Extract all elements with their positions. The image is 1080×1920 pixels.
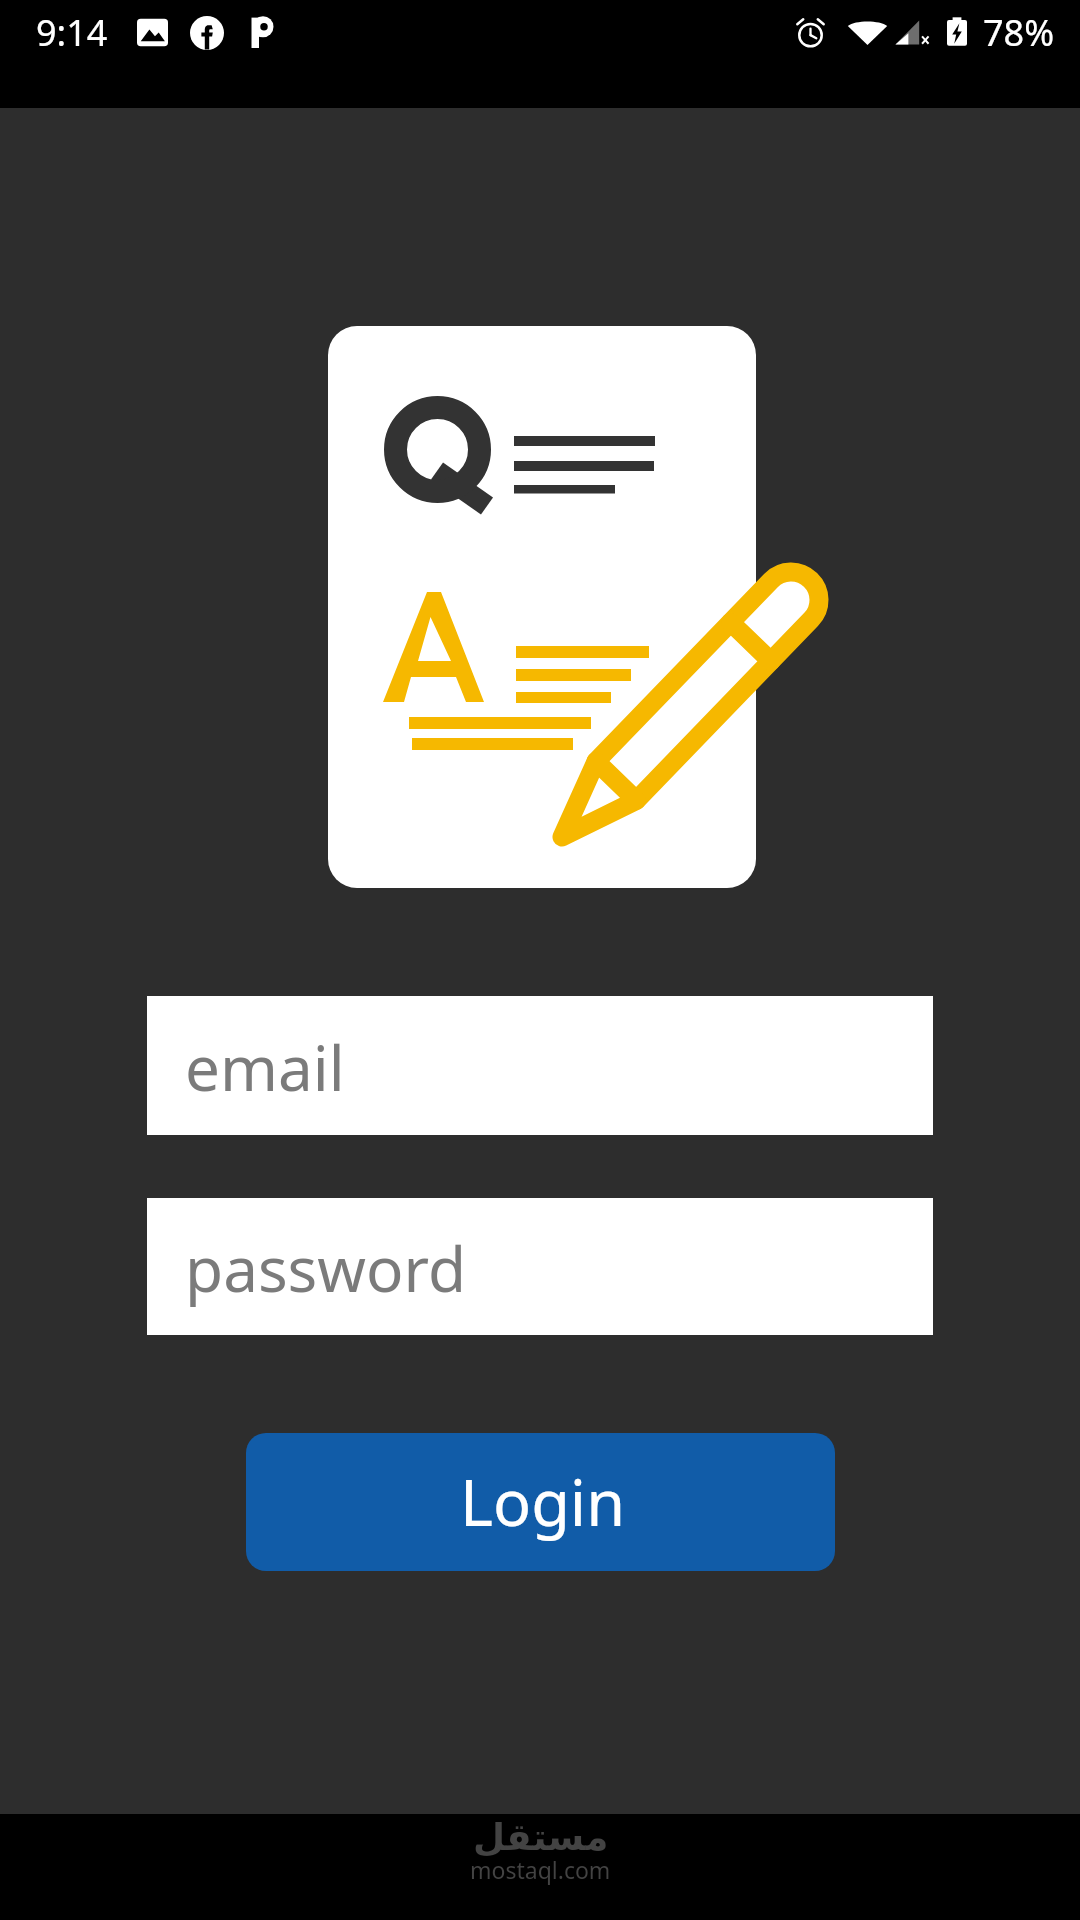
button[interactable]: Login [246, 1433, 835, 1571]
other: Battery [947, 16, 967, 49]
button[interactable]: password [147, 1198, 933, 1335]
other: Facebook [190, 16, 224, 50]
staticText: email [185, 1025, 345, 1109]
other: App [250, 17, 275, 48]
other: Wi-Fi [847, 16, 888, 49]
staticText: مستقل [473, 1816, 609, 1859]
staticText: password [185, 1226, 467, 1310]
staticText: Login [460, 1459, 626, 1545]
other: Alarm [794, 16, 827, 49]
other: Photos [137, 17, 168, 48]
staticText: 9:14 [36, 8, 108, 57]
staticText: 78% [983, 8, 1055, 57]
other: Signal [894, 16, 930, 49]
button[interactable]: email [147, 996, 933, 1135]
staticText: mostaql.com [470, 1854, 611, 1885]
